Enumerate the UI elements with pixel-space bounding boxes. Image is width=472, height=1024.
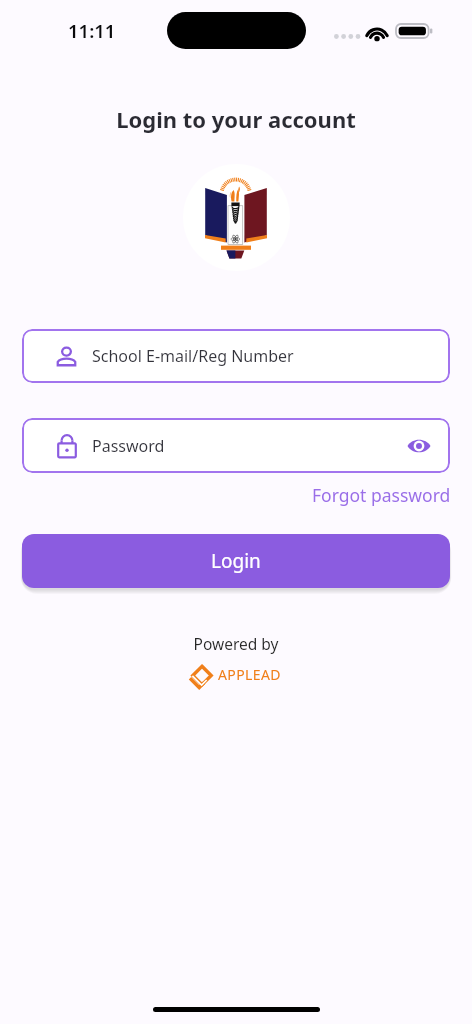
staticText: 11:11 [68, 18, 116, 43]
button[interactable]: Show password [404, 431, 434, 461]
staticText: School E-mail/Reg Number [92, 345, 294, 367]
staticText: Powered by [0, 633, 472, 654]
staticText: Forgot password [312, 483, 451, 507]
staticText: Password [92, 435, 165, 457]
staticText: APPLEAD [218, 665, 281, 684]
button[interactable]: Login [22, 534, 450, 588]
staticText: Login to your account [0, 104, 472, 134]
staticText: Login [211, 548, 261, 574]
button[interactable]: School E-mail/Reg Number [22, 329, 450, 383]
button[interactable]: Password [22, 418, 450, 473]
button[interactable]: Forgot password [312, 483, 451, 507]
